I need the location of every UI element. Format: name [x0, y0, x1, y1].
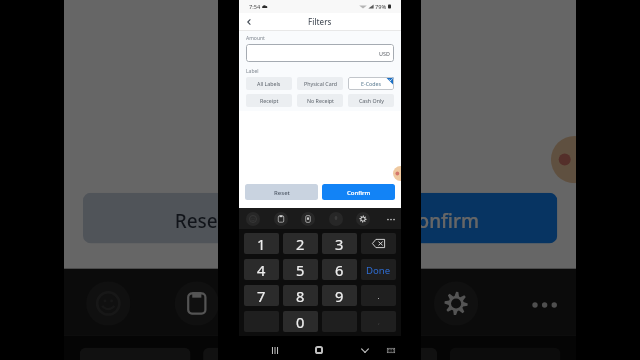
staticText: 9	[335, 286, 344, 306]
staticText: 2	[296, 234, 305, 254]
button[interactable]: Home	[312, 343, 326, 357]
staticText: Reset	[175, 209, 225, 234]
staticText: 7:54	[249, 3, 261, 11]
staticText: USD	[379, 50, 390, 57]
button[interactable]: Physical Card	[297, 77, 343, 90]
staticText: Physical Card	[304, 80, 337, 87]
staticText: 5	[296, 260, 305, 280]
button[interactable]: Reset	[245, 184, 318, 200]
button[interactable]: 5	[283, 259, 318, 280]
button[interactable]: More options	[384, 212, 398, 226]
button[interactable]: Recent apps	[268, 343, 282, 357]
button[interactable]: More options	[522, 281, 567, 326]
staticText: 3	[368, 351, 396, 360]
button[interactable]: Keyboard tool 2	[260, 281, 304, 326]
staticText: Amount	[246, 35, 265, 42]
button[interactable]: No Receipt	[297, 94, 343, 107]
button[interactable]: Done	[361, 259, 396, 280]
button[interactable]: Keyboard tool 4	[356, 212, 370, 226]
button[interactable]: 3	[326, 348, 437, 360]
button[interactable]: Receipt	[246, 94, 292, 107]
staticText: 1	[257, 234, 266, 254]
staticText: Confirm	[347, 189, 371, 197]
button[interactable]: Keyboard tool 1	[274, 212, 288, 226]
staticText: 79%	[375, 3, 387, 11]
staticText: 8	[296, 286, 305, 306]
staticText: ,	[378, 317, 380, 327]
button[interactable]: Confirm	[326, 193, 557, 243]
button[interactable]: Reset	[83, 193, 314, 243]
staticText: Cash Only	[359, 97, 384, 104]
button[interactable]: Keyboard tool 0	[246, 212, 260, 226]
button[interactable]: Profile	[393, 166, 401, 181]
button[interactable]: Keyboard tool 1	[175, 281, 219, 326]
button[interactable]: 0	[283, 311, 318, 332]
button[interactable]: Keyboard tool 2	[301, 212, 315, 226]
button[interactable]: 1	[244, 233, 279, 254]
button[interactable]: Keyboard tool 3	[329, 212, 343, 226]
button[interactable]: Cash Only	[348, 94, 394, 107]
button[interactable]: 3	[322, 233, 357, 254]
button[interactable]: 9	[322, 285, 357, 306]
button[interactable]: Confirm	[322, 184, 395, 200]
staticText: 2	[244, 351, 273, 360]
staticText: 4	[257, 260, 266, 280]
button[interactable]: 7	[244, 285, 279, 306]
button[interactable]: All Labels	[246, 77, 292, 90]
staticText: Filters	[308, 16, 332, 27]
button[interactable]: Keyboard tool 3	[349, 281, 393, 326]
staticText: 0	[296, 312, 305, 332]
staticText: 3	[335, 234, 344, 254]
button[interactable]: E-Codes	[348, 77, 394, 90]
staticText: No Receipt	[307, 97, 334, 104]
button[interactable]: Profile	[551, 136, 598, 183]
button[interactable]	[361, 233, 396, 254]
button[interactable]: Switch keyboard	[384, 343, 398, 357]
button[interactable]: 6	[322, 259, 357, 280]
button[interactable]: Keyboard tool 0	[86, 281, 130, 326]
staticText: 6	[335, 260, 344, 280]
staticText: Label	[246, 68, 259, 75]
button[interactable]: Hide keyboard	[358, 343, 372, 357]
staticText: Done	[366, 264, 391, 277]
button[interactable]: Keyboard tool 4	[434, 281, 478, 326]
button[interactable]: 2	[203, 348, 314, 360]
staticText: 7	[257, 286, 266, 306]
button[interactable]: 4	[244, 259, 279, 280]
staticText: All Labels	[257, 80, 281, 87]
staticText: E-Codes	[361, 80, 381, 87]
button[interactable]: 2	[283, 233, 318, 254]
button[interactable]: Back	[242, 15, 256, 29]
button[interactable]: 8	[283, 285, 318, 306]
staticText: Confirm	[405, 209, 481, 234]
button[interactable]	[361, 285, 396, 306]
staticText: Reset	[274, 189, 290, 197]
button[interactable]: USD	[246, 44, 394, 62]
staticText: Receipt	[260, 97, 279, 104]
